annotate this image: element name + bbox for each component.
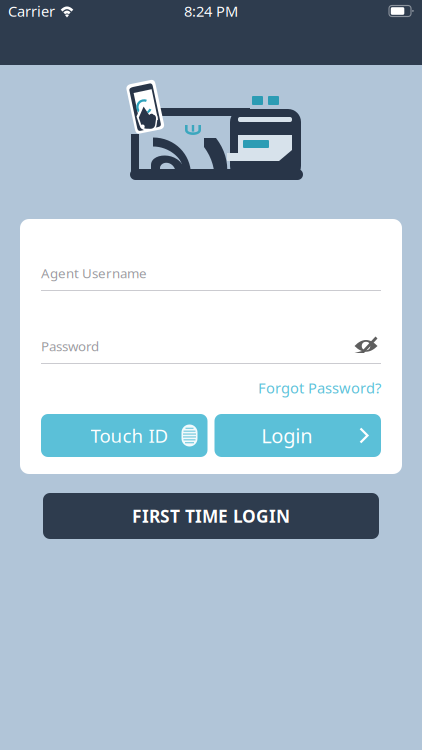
button[interactable]: Login — [214, 414, 381, 457]
staticText: 8:24 PM — [184, 1, 238, 21]
staticText: Forgot Password? — [258, 378, 381, 397]
button[interactable]: Touch ID — [41, 414, 207, 457]
staticText: FIRST TIME LOGIN — [132, 504, 290, 527]
button[interactable]: Forgot Password? — [258, 378, 381, 397]
staticText: Carrier — [8, 1, 55, 21]
button[interactable]: Show password — [351, 335, 381, 357]
staticText: Password — [41, 337, 99, 355]
staticText: Login — [261, 422, 312, 449]
button[interactable]: FIRST TIME LOGIN — [43, 493, 379, 539]
staticText: Agent Username — [41, 264, 147, 282]
staticText: Touch ID — [90, 423, 168, 448]
